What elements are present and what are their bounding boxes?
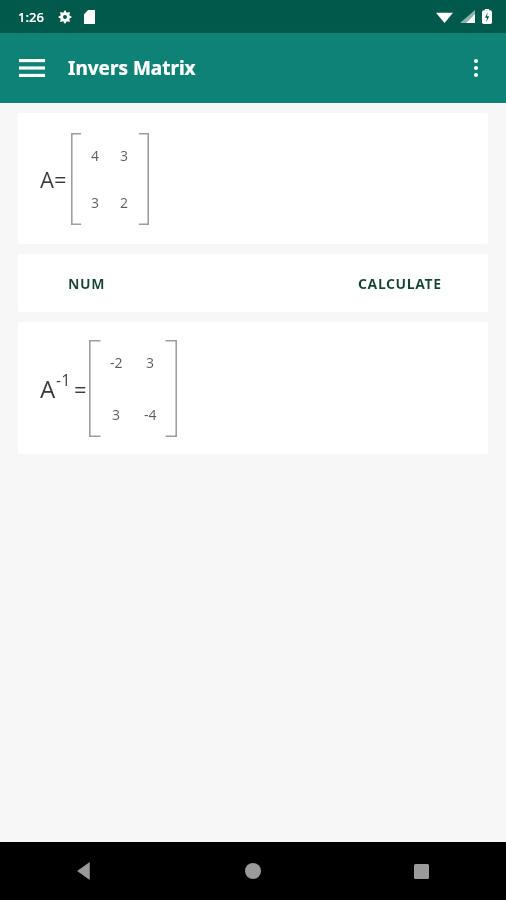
staticText: 3 xyxy=(146,353,155,372)
button[interactable]: Recent apps xyxy=(337,842,506,900)
button[interactable]: NUM xyxy=(58,266,115,301)
staticText: -4 xyxy=(144,405,157,424)
button[interactable]: Open navigation drawer xyxy=(8,44,56,92)
staticText: A xyxy=(40,372,56,405)
button[interactable]: NUM xyxy=(18,254,488,312)
staticText: -1 xyxy=(56,369,71,391)
button[interactable]: More options xyxy=(452,44,500,92)
staticText: 4 xyxy=(91,146,100,165)
staticText: A= xyxy=(40,164,67,194)
staticText: 2 xyxy=(120,193,129,212)
staticText: = xyxy=(74,374,87,404)
staticText: NUM xyxy=(68,274,105,293)
staticText: -2 xyxy=(110,353,123,372)
button[interactable]: A= xyxy=(18,113,488,244)
staticText: 3 xyxy=(91,193,100,212)
button[interactable]: Back xyxy=(0,842,168,900)
button[interactable]: CALCULATE xyxy=(348,266,452,301)
button[interactable]: Home xyxy=(168,842,337,900)
staticText: 3 xyxy=(112,405,121,424)
staticText: 3 xyxy=(120,146,129,165)
button[interactable]: A xyxy=(18,322,488,454)
staticText: 1:26 xyxy=(18,8,44,26)
staticText: Invers Matrix xyxy=(68,55,196,81)
staticText: CALCULATE xyxy=(358,274,442,293)
